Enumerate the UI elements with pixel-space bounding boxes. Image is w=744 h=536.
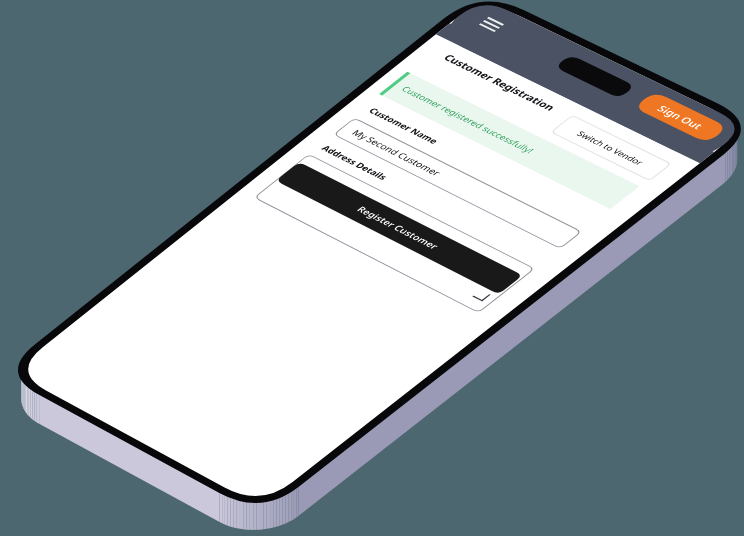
button[interactable] (0, 0, 744, 536)
